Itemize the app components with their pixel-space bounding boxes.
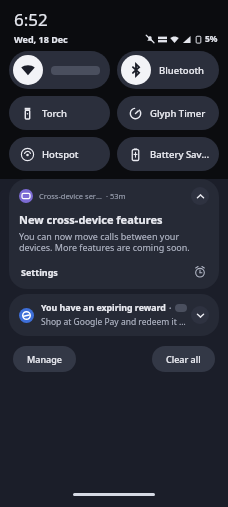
staticText: Glyph Timer — [150, 107, 206, 120]
staticText: 6:52 — [14, 8, 48, 31]
staticText: Settings — [21, 266, 58, 278]
button[interactable]: Hotspot — [9, 137, 110, 171]
staticText: Battery Saver — [150, 148, 211, 161]
button[interactable]: Cross-device services via Google Play se… — [9, 179, 219, 289]
button[interactable]: Glyph Timer — [117, 96, 219, 130]
staticText: Clear all — [166, 353, 201, 365]
staticText: Hotspot — [42, 148, 79, 161]
button[interactable]: Torch — [9, 96, 110, 130]
button[interactable]: Collapse — [191, 187, 209, 205]
button[interactable]: Manage — [13, 346, 76, 372]
staticText: Manage — [27, 353, 62, 365]
button[interactable]: Snooze — [191, 263, 209, 281]
staticText: Cross-device services via Google Play se… — [39, 191, 103, 201]
staticText: · — [169, 302, 172, 314]
staticText: · 53m — [106, 191, 126, 201]
button[interactable]: Battery Saver — [117, 137, 219, 171]
button[interactable]: Bluetooth — [117, 51, 219, 89]
staticText: Shop at Google Pay and redeem it now — [41, 316, 187, 328]
button[interactable]: Clear all — [152, 346, 215, 372]
staticText: You have an expiring reward — [41, 302, 166, 314]
button[interactable]: Settings — [19, 264, 60, 280]
button[interactable]: Expand — [191, 306, 209, 324]
staticText: You can now move calls between your devi… — [19, 230, 209, 254]
staticText: Bluetooth — [159, 64, 205, 77]
staticText: Torch — [42, 107, 67, 120]
button[interactable]: You have an expiring reward — [9, 294, 219, 336]
staticText: New cross-device features — [19, 212, 163, 227]
staticText: 5% — [205, 33, 218, 45]
button[interactable]: Internet — [9, 51, 110, 89]
staticText: Wed, 18 Dec — [14, 33, 68, 45]
